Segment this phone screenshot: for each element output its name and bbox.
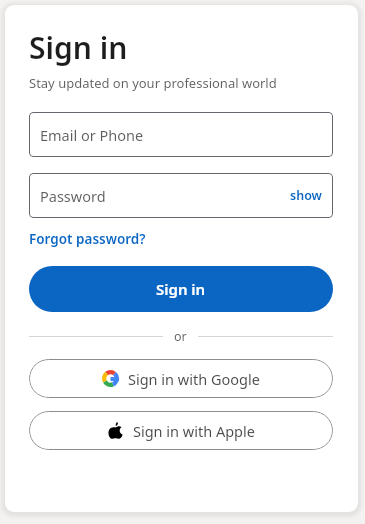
button[interactable]: Email or Phone (29, 112, 333, 157)
staticText: Sign in with Google (128, 369, 260, 389)
staticText: Sign in with Apple (133, 421, 255, 441)
other: Apple logo (107, 422, 124, 439)
button[interactable]: Sign in (29, 266, 333, 312)
staticText: Sign in (29, 27, 128, 68)
button[interactable]: Apple logo (29, 411, 333, 450)
staticText: Sign in (156, 279, 206, 299)
staticText: Stay updated on your professional world (29, 74, 277, 92)
staticText: Email or Phone (40, 125, 144, 145)
button[interactable]: Forgot password? (29, 230, 146, 248)
button[interactable]: Google logo (29, 359, 333, 398)
other: Google logo (102, 370, 119, 387)
staticText: Forgot password? (29, 230, 146, 248)
staticText: show (290, 187, 322, 204)
button[interactable]: show (290, 187, 322, 204)
staticText: Password (40, 186, 106, 206)
button[interactable]: Password (29, 173, 333, 218)
staticText: or (174, 328, 187, 345)
